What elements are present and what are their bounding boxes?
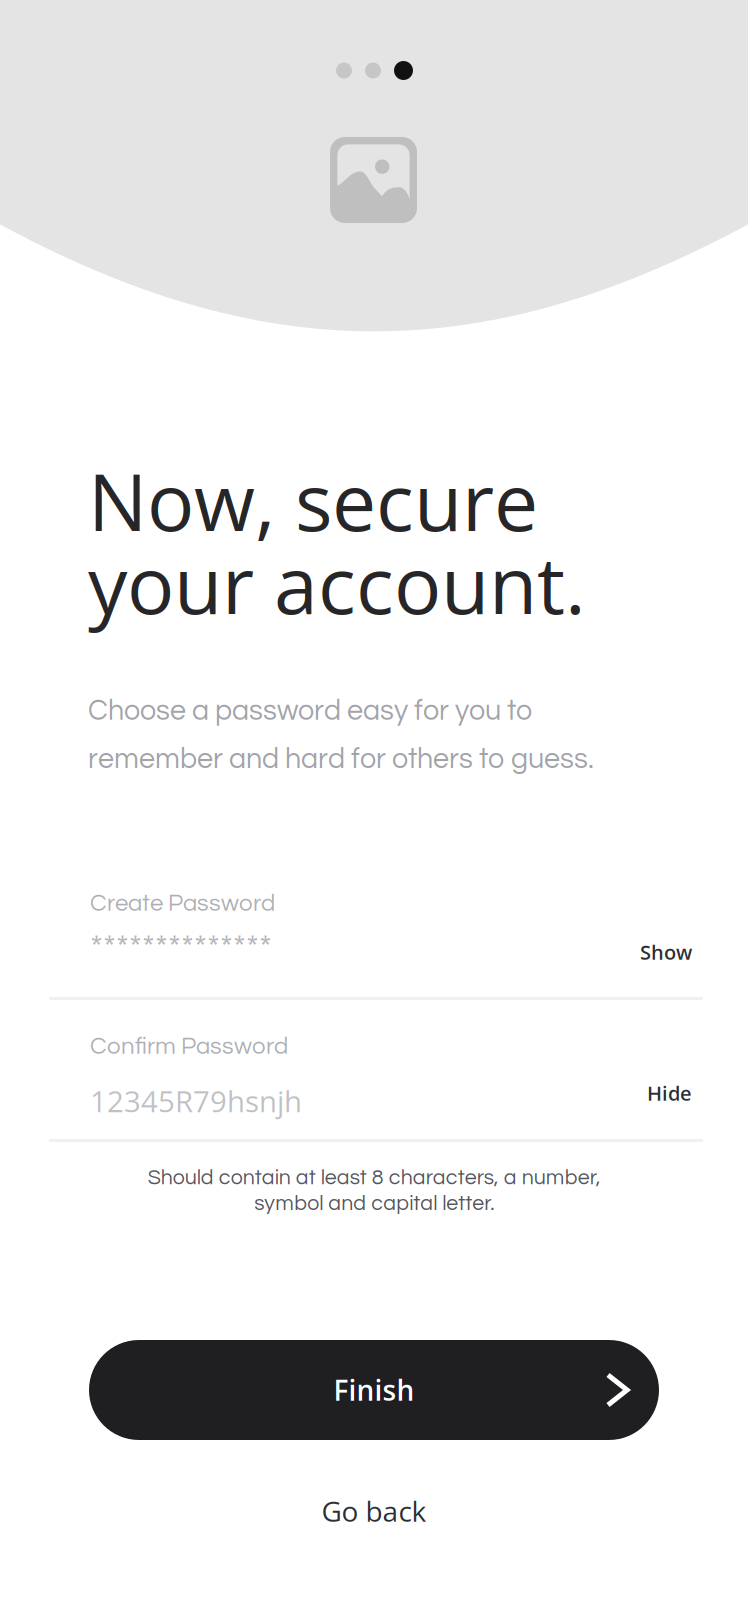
button[interactable]: Hide [0, 1075, 692, 1111]
staticText: Finish [333, 1371, 414, 1409]
staticText: Go back [321, 1492, 426, 1530]
staticText: Create Password [90, 891, 275, 916]
staticText: Confirm Password [90, 1034, 288, 1059]
staticText: Choose a password easy for you to rememb… [88, 687, 594, 783]
button[interactable]: Go back [0, 1494, 748, 1528]
staticText: Should contain at least 8 characters, a … [147, 1165, 600, 1216]
button[interactable]: Finish [89, 1340, 659, 1440]
button[interactable]: Show [0, 934, 692, 970]
staticText: 12345R79hsnjh [90, 1081, 302, 1121]
staticText: Now, secure your account. [88, 459, 586, 625]
staticText: Hide [647, 1079, 692, 1107]
staticText: Show [640, 938, 692, 966]
staticText: ************** [90, 930, 272, 966]
